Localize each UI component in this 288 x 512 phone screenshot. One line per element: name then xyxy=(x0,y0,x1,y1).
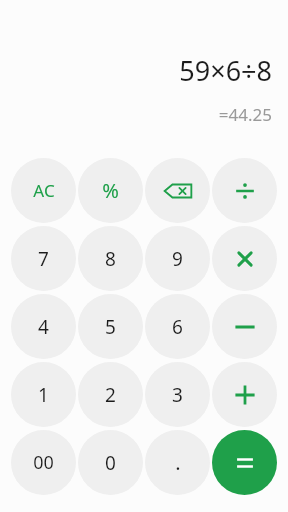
button[interactable]: 2 xyxy=(78,362,143,427)
button[interactable]: 00 xyxy=(11,430,76,495)
button[interactable]: Multiply xyxy=(212,226,277,291)
button[interactable]: 6 xyxy=(145,294,210,359)
button[interactable]: Plus xyxy=(212,362,277,427)
button[interactable]: AC xyxy=(11,158,76,223)
staticText: 8 xyxy=(105,246,116,272)
button[interactable]: Backspace xyxy=(145,158,210,223)
staticText: 0 xyxy=(105,450,116,476)
staticText: 4 xyxy=(38,314,49,340)
staticText: =44.25 xyxy=(218,103,272,126)
staticText: 2 xyxy=(105,382,116,408)
button[interactable]: 0 xyxy=(78,430,143,495)
staticText: 7 xyxy=(38,246,49,272)
button[interactable]: Minus xyxy=(212,294,277,359)
staticText: 3 xyxy=(172,382,183,408)
button[interactable]: % xyxy=(78,158,143,223)
staticText: % xyxy=(102,177,119,204)
button[interactable]: 9 xyxy=(145,226,210,291)
staticText: 1 xyxy=(38,382,49,408)
staticText: . xyxy=(175,449,181,476)
button[interactable]: Divide xyxy=(212,158,277,223)
staticText: 59×6÷8 xyxy=(179,52,272,89)
staticText: 00 xyxy=(33,450,54,475)
staticText: 5 xyxy=(105,314,116,340)
staticText: 9 xyxy=(172,246,183,272)
button[interactable]: Equals xyxy=(212,430,277,495)
button[interactable]: 5 xyxy=(78,294,143,359)
button[interactable]: . xyxy=(145,430,210,495)
button[interactable]: 4 xyxy=(11,294,76,359)
button[interactable]: 7 xyxy=(11,226,76,291)
button[interactable]: 3 xyxy=(145,362,210,427)
button[interactable]: 8 xyxy=(78,226,143,291)
staticText: 6 xyxy=(172,314,183,340)
button[interactable]: 1 xyxy=(11,362,76,427)
staticText: AC xyxy=(33,179,55,202)
